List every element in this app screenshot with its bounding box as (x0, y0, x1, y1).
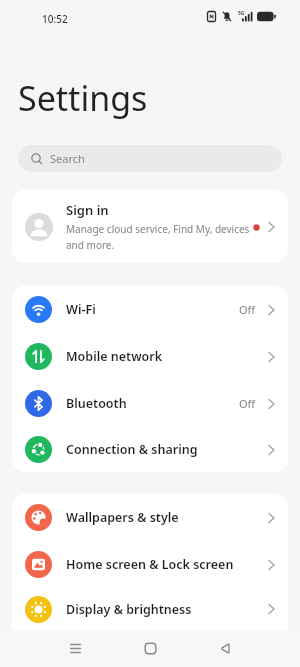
staticText: Search (50, 151, 85, 166)
button[interactable]: Sign in (12, 190, 288, 263)
staticText: Sign in (66, 201, 109, 219)
button[interactable] (130, 630, 170, 667)
staticText: and more. (66, 238, 115, 252)
button[interactable] (205, 630, 245, 667)
staticText: Wallpapers & style (66, 509, 268, 526)
staticText: Mobile network (66, 348, 268, 365)
staticText: Manage cloud service, Find My, devices (66, 222, 250, 236)
staticText: Off (239, 302, 256, 317)
staticText: 10:52 (42, 12, 68, 26)
button[interactable] (55, 630, 95, 667)
staticText: Bluetooth (66, 395, 239, 412)
staticText: Off (239, 396, 256, 411)
button[interactable]: Search (18, 145, 282, 172)
staticText: Connection & sharing (66, 441, 268, 458)
staticText: 5G (238, 10, 245, 17)
button[interactable]: Bluetooth (12, 380, 288, 427)
button[interactable]: Home screen & Lock screen (12, 541, 288, 588)
button[interactable]: Wallpapers & style (12, 494, 288, 541)
staticText: Display & brightness (66, 601, 268, 618)
button[interactable]: Wi-Fi (12, 286, 288, 333)
staticText: Settings (18, 75, 148, 121)
button[interactable]: Display & brightness (12, 588, 288, 630)
button[interactable]: Connection & sharing (12, 427, 288, 472)
staticText: Wi-Fi (66, 301, 239, 318)
staticText: Home screen & Lock screen (66, 556, 268, 573)
button[interactable]: Mobile network (12, 333, 288, 380)
